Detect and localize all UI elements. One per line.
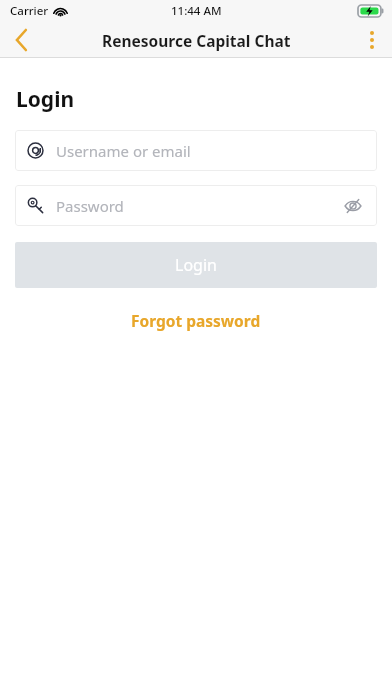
staticText: Login: [175, 254, 217, 276]
staticText: Forgot password: [131, 310, 261, 331]
staticText: Password: [56, 196, 341, 216]
staticText: Carrier: [10, 3, 49, 19]
button[interactable]: Show password: [341, 194, 365, 218]
button[interactable]: Password: [15, 185, 377, 226]
button[interactable]: More options: [352, 22, 392, 58]
button[interactable]: Forgot password: [0, 304, 392, 337]
button[interactable]: Login: [15, 242, 377, 288]
staticText: Login: [16, 85, 75, 114]
button[interactable]: Back: [0, 22, 44, 58]
staticText: Username or email: [56, 141, 365, 161]
staticText: Renesource Capital Chat: [102, 30, 291, 51]
button[interactable]: Username or email: [15, 130, 377, 171]
staticText: 11:44 AM: [171, 3, 222, 19]
